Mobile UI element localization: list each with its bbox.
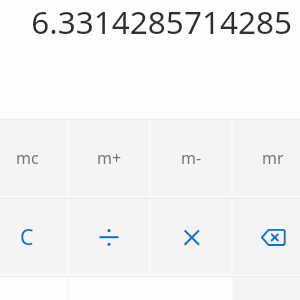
staticText: m- — [181, 147, 202, 169]
button[interactable]: mc — [0, 119, 68, 198]
staticText: 6.3314285714285 — [31, 0, 292, 43]
button[interactable]: Backspace — [232, 198, 300, 277]
button[interactable]: Multiply — [150, 198, 232, 277]
staticText: m+ — [97, 147, 122, 169]
staticText: mr — [262, 147, 284, 169]
staticText: mc — [16, 147, 39, 169]
button[interactable]: m+ — [68, 119, 150, 198]
button[interactable]: 7 — [0, 276, 68, 300]
button[interactable]: m- — [150, 119, 232, 198]
button[interactable]: Divide — [68, 198, 150, 277]
button[interactable]: mr — [232, 119, 300, 198]
button[interactable]: 8 — [68, 276, 150, 300]
staticText: C — [20, 222, 34, 251]
button[interactable]: 9 — [150, 276, 232, 300]
button[interactable]: Clear — [0, 198, 68, 277]
